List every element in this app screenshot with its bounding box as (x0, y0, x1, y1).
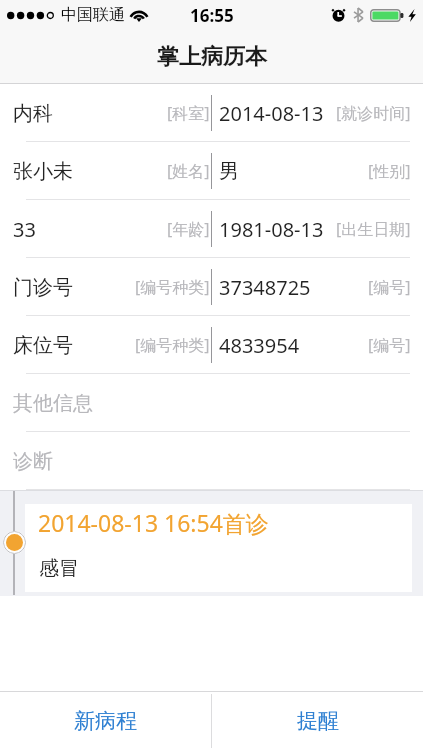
staticText: [编号] (368, 334, 411, 356)
staticText: 门诊号 (13, 275, 73, 300)
staticText: 37348725 (219, 274, 311, 301)
button[interactable]: 其他信息 (0, 374, 423, 432)
staticText: [科室] (167, 102, 210, 124)
staticText: 张小未 (13, 159, 73, 184)
staticText: [编号] (368, 276, 411, 298)
button[interactable]: 张小未 (0, 142, 423, 200)
staticText: 16:55 (190, 4, 234, 27)
button[interactable]: 提醒 (212, 691, 423, 750)
button[interactable]: 门诊号 (0, 258, 423, 316)
button[interactable]: 内科 (0, 84, 423, 142)
staticText: [编号种类] (135, 334, 210, 356)
staticText: 中国联通 (61, 5, 125, 25)
button[interactable]: 新病程 (0, 691, 211, 750)
staticText: [姓名] (167, 160, 210, 182)
button[interactable]: 诊断 (0, 432, 423, 490)
staticText: 4833954 (219, 332, 300, 359)
staticText: 2014-08-13 16:54首诊 (38, 507, 269, 538)
staticText: 新病程 (74, 708, 137, 734)
staticText: [年龄] (167, 218, 210, 240)
staticText: [出生日期] (336, 218, 411, 240)
staticText: 男 (219, 159, 239, 184)
staticText: 床位号 (13, 333, 73, 358)
staticText: 诊断 (13, 449, 53, 474)
staticText: 其他信息 (13, 391, 93, 416)
staticText: 1981-08-13 (219, 216, 324, 243)
staticText: [性别] (368, 160, 411, 182)
button[interactable]: 33 (0, 200, 423, 258)
staticText: 内科 (13, 101, 53, 126)
button[interactable]: 2014-08-13 16:54首诊 (25, 504, 412, 592)
staticText: 2014-08-13 (219, 100, 324, 127)
staticText: 提醒 (297, 708, 339, 734)
staticText: 感冒 (39, 556, 79, 581)
button[interactable]: 床位号 (0, 316, 423, 374)
staticText: 掌上病历本 (157, 43, 267, 71)
staticText: [就诊时间] (336, 102, 411, 124)
staticText: 33 (13, 216, 36, 243)
staticText: [编号种类] (135, 276, 210, 298)
